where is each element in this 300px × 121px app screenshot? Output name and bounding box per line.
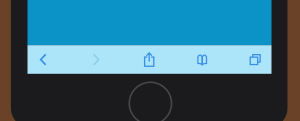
- button[interactable]: Share: [123, 45, 176, 74]
- button[interactable]: Back: [17, 45, 70, 74]
- button[interactable]: Forward: [70, 45, 123, 74]
- button[interactable]: Bookmarks: [176, 45, 229, 74]
- button[interactable]: Tabs: [229, 45, 282, 74]
- button[interactable]: Home: [129, 82, 171, 121]
